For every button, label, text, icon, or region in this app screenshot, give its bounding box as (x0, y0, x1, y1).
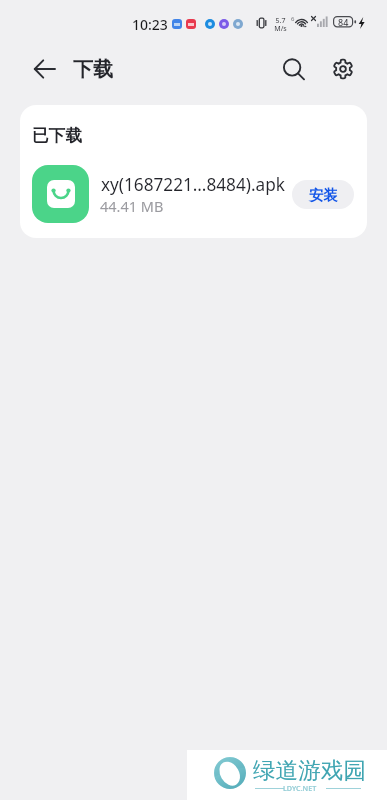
staticText: 10:23 (132, 15, 168, 34)
staticText: LDYC.NET (283, 783, 317, 793)
button[interactable]: Search (270, 46, 315, 91)
staticText: 44.41 MB (100, 196, 164, 216)
staticText: 已下载 (32, 125, 82, 146)
staticText: xy(1687221…8484).apk (101, 173, 285, 196)
staticText: 5.7 M/s (274, 16, 287, 33)
staticText: 84 (338, 16, 349, 28)
staticText: 绿道游戏园 (253, 756, 366, 784)
staticText: 下载 (73, 57, 113, 82)
staticText: 安装 (309, 186, 338, 204)
button[interactable]: Settings (320, 46, 365, 91)
button[interactable]: 安装 (292, 180, 354, 209)
staticText: 6 (291, 15, 295, 23)
button[interactable]: Back (22, 46, 67, 91)
